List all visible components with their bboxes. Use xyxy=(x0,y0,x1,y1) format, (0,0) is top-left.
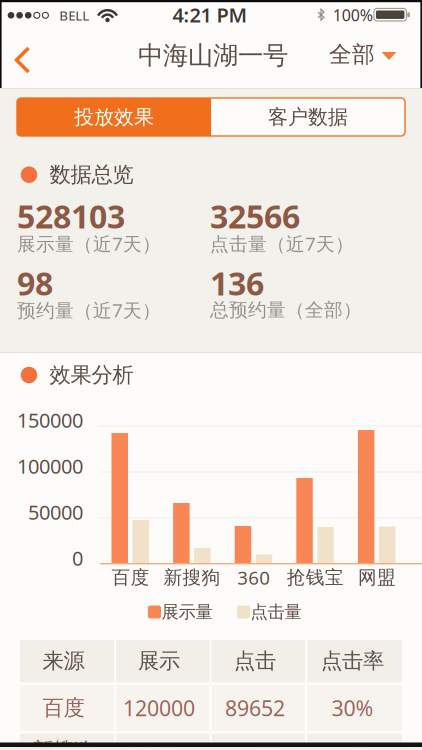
button[interactable]: 客户数据 xyxy=(211,98,405,136)
staticText: 64000 xyxy=(129,736,189,750)
staticText: 全部 xyxy=(329,41,375,68)
staticText: 点击率 xyxy=(321,648,384,674)
staticText: 展示量（近7天） xyxy=(17,231,161,256)
staticText: 点击量（近7天） xyxy=(210,231,354,256)
staticText: 4:21 PM xyxy=(172,1,247,28)
staticText: 120000 xyxy=(123,694,195,722)
staticText: 23% xyxy=(331,736,373,750)
staticText: 点击 xyxy=(234,648,276,674)
staticText: 89652 xyxy=(225,694,285,722)
staticText: 新搜狗 xyxy=(164,566,221,589)
staticText: 展示 xyxy=(138,648,180,674)
staticText: 32566 xyxy=(210,195,300,237)
staticText: BELL xyxy=(59,6,89,24)
staticText: 抢钱宝 xyxy=(287,566,344,589)
staticText: 客户数据 xyxy=(268,105,348,129)
staticText: 百度 xyxy=(42,695,84,721)
staticText: 展示量 xyxy=(161,601,212,623)
staticText: 数据总览 xyxy=(49,162,133,188)
staticText: 150000 xyxy=(17,407,83,433)
staticText: 百度 xyxy=(111,566,149,589)
staticText: 100000 xyxy=(17,453,83,479)
staticText: 15236 xyxy=(225,736,285,750)
button[interactable]: 投放效果 xyxy=(17,98,211,136)
staticText: 新搜狗 xyxy=(32,737,95,750)
staticText: 网盟 xyxy=(358,566,396,589)
staticText: 效果分析 xyxy=(49,362,133,388)
staticText: 来源 xyxy=(42,648,84,674)
staticText: 50000 xyxy=(28,499,83,525)
staticText: 30% xyxy=(331,694,373,722)
staticText: 360 xyxy=(237,565,270,590)
staticText: 预约量（近7天） xyxy=(17,298,161,322)
staticText: 100% xyxy=(333,4,373,26)
staticText: 总预约量（全部） xyxy=(210,298,362,321)
staticText: 中海山湖一号 xyxy=(138,40,288,71)
staticText: 0 xyxy=(72,545,83,571)
button[interactable]: 全部 xyxy=(330,38,400,74)
staticText: 136 xyxy=(210,262,264,304)
staticText: 点击量 xyxy=(250,601,301,623)
staticText: 528103 xyxy=(17,195,125,237)
button[interactable] xyxy=(0,38,44,82)
button[interactable] xyxy=(20,685,402,731)
staticText: 98 xyxy=(17,262,53,304)
staticText: 投放效果 xyxy=(74,105,154,129)
